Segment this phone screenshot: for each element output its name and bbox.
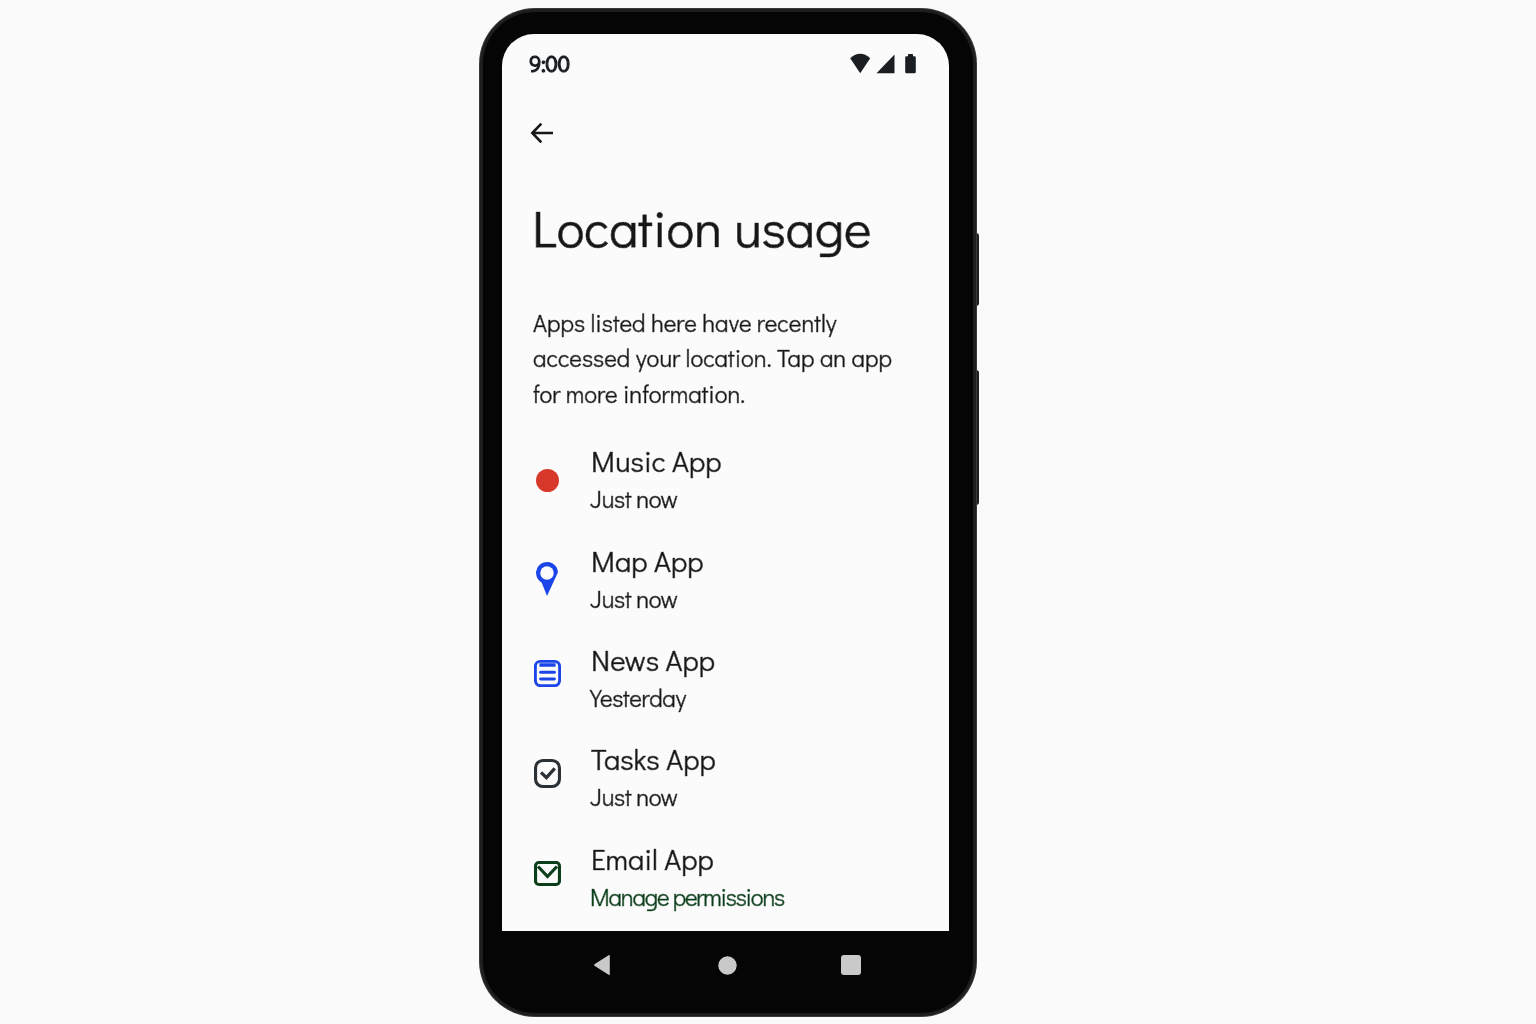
button[interactable]: Music App <box>502 433 949 532</box>
staticText: Tasks App <box>591 740 716 778</box>
staticText: Tasks App <box>591 740 716 778</box>
staticText: Just now <box>590 781 678 812</box>
button[interactable]: Recent apps <box>831 945 871 985</box>
button[interactable]: News App <box>502 632 949 731</box>
staticText: Manage permissions <box>590 881 785 912</box>
staticText: Just now <box>590 583 678 614</box>
staticText: Yesterday <box>590 682 686 713</box>
staticText: Music App <box>591 442 722 480</box>
button[interactable]: Home <box>707 945 747 985</box>
staticText: 9:00 <box>529 49 571 78</box>
staticText: News App <box>591 641 716 679</box>
staticText: Just now <box>590 781 678 812</box>
staticText: Apps listed here have recently accessed … <box>533 307 895 410</box>
button[interactable]: Email App <box>502 831 949 930</box>
staticText: Email App <box>591 840 714 878</box>
staticText: Just now <box>590 483 678 514</box>
button[interactable]: Map App <box>502 533 949 632</box>
staticText: 9:00 <box>529 49 571 78</box>
staticText: Location usage <box>532 193 872 261</box>
staticText: Music App <box>591 442 722 480</box>
staticText: Email App <box>591 840 714 878</box>
button[interactable]: Back <box>581 945 621 985</box>
staticText: Map App <box>591 542 704 580</box>
staticText: Map App <box>591 542 704 580</box>
button[interactable]: Back <box>518 109 566 157</box>
staticText: Apps listed here have recently accessed … <box>533 307 895 410</box>
staticText: News App <box>591 641 716 679</box>
staticText: Manage permissions <box>590 881 785 912</box>
button[interactable]: Tasks App <box>502 731 949 830</box>
staticText: Just now <box>590 483 678 514</box>
staticText: Just now <box>590 583 678 614</box>
staticText: Location usage <box>532 193 872 261</box>
staticText: Yesterday <box>590 682 686 713</box>
